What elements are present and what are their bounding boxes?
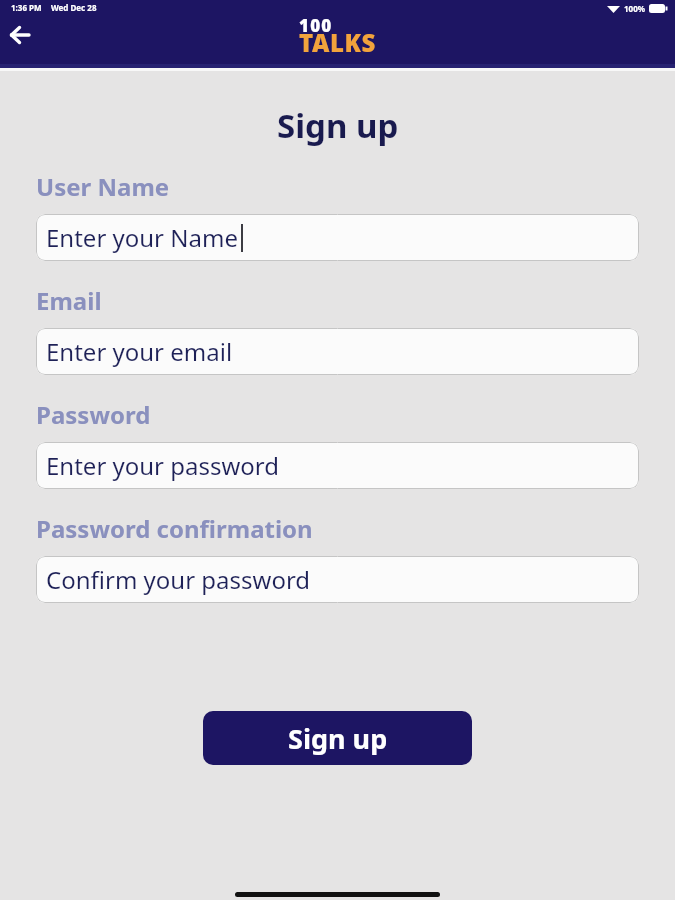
staticText: Confirm your password [46, 563, 311, 596]
staticText: User Name [36, 170, 170, 203]
staticText: Password confirmation [36, 512, 313, 545]
staticText: Enter your Name [46, 221, 238, 254]
staticText: 100% [624, 3, 645, 14]
button[interactable] [4, 19, 36, 51]
staticText: Enter your password [46, 449, 280, 482]
button[interactable]: Enter your Name [36, 214, 639, 261]
staticText: Wed Dec 28 [51, 2, 97, 13]
staticText: 100 [299, 14, 333, 37]
staticText: Password [36, 398, 151, 431]
button[interactable]: Enter your password [36, 442, 639, 489]
button[interactable]: Enter your email [36, 328, 639, 375]
staticText: Email [36, 284, 102, 317]
staticText: TALKS [299, 26, 376, 59]
button[interactable]: Confirm your password [36, 556, 639, 603]
staticText: 1:36 PM [11, 2, 42, 13]
staticText: Sign up [288, 720, 388, 757]
button[interactable]: Sign up [203, 711, 472, 765]
staticText: Sign up [277, 103, 399, 148]
staticText: Enter your email [46, 335, 233, 368]
